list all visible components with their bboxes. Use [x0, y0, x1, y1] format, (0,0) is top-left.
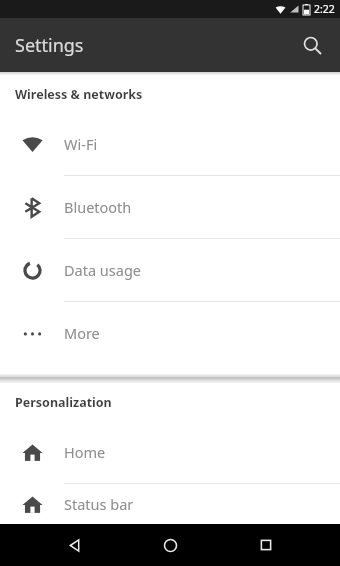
- staticText: Wireless & networks: [15, 86, 143, 103]
- staticText: Personalization: [15, 394, 112, 411]
- staticText: Status bar: [64, 494, 134, 514]
- button[interactable]: Status bar: [0, 484, 340, 524]
- button[interactable]: Back: [52, 524, 96, 566]
- button[interactable]: Home: [148, 524, 192, 566]
- button[interactable]: Wi-Fi: [0, 113, 340, 176]
- button[interactable]: Data usage: [0, 239, 340, 302]
- button[interactable]: Bluetooth: [0, 176, 340, 239]
- staticText: Settings: [15, 33, 84, 58]
- staticText: Wi-Fi: [64, 134, 98, 154]
- staticText: Home: [64, 442, 106, 462]
- staticText: Data usage: [64, 260, 141, 280]
- button[interactable]: More: [0, 302, 340, 364]
- button[interactable]: Home: [0, 421, 340, 484]
- staticText: Bluetooth: [64, 197, 132, 217]
- button[interactable]: Search: [292, 25, 332, 65]
- staticText: 2:22: [314, 2, 335, 16]
- staticText: More: [64, 323, 100, 343]
- button[interactable]: Recents: [244, 524, 288, 566]
